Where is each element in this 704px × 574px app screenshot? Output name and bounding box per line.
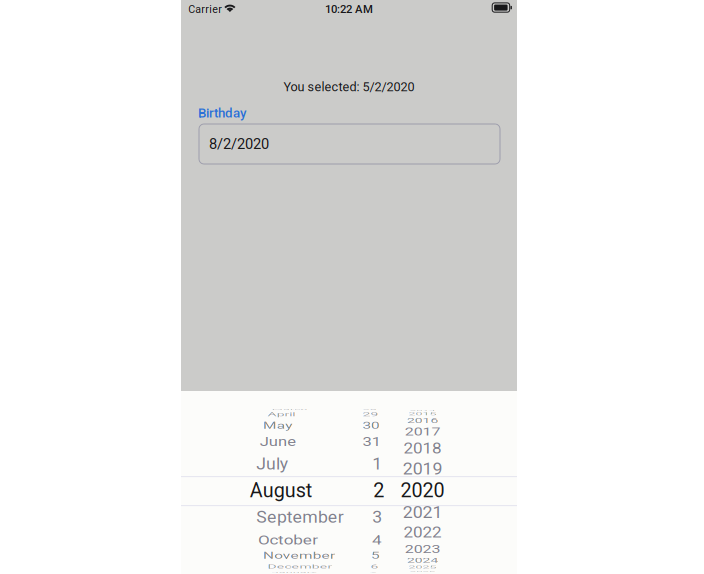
staticText: Carrier (188, 3, 222, 16)
staticText: November (255, 545, 339, 566)
staticText: 2024 (403, 550, 443, 571)
button[interactable]: 8/2/2020 (199, 124, 500, 164)
staticText: 2022 (403, 522, 443, 543)
staticText: 2015 (403, 403, 443, 424)
staticText: 5 (372, 545, 382, 566)
staticText: You selected: 5/2/2020 (283, 80, 414, 94)
staticText: 3 (372, 507, 382, 528)
staticText: 2 (372, 480, 382, 501)
staticText: 2021 (403, 502, 443, 523)
staticText: June (255, 431, 295, 452)
staticText: 2018 (403, 438, 443, 459)
staticText: January (255, 562, 320, 574)
staticText: May (255, 415, 290, 436)
button[interactable]: Birthday (198, 105, 318, 121)
staticText: 2014 (403, 400, 443, 421)
staticText: August (255, 480, 312, 501)
staticText: 2026 (403, 561, 443, 574)
staticText: July (255, 453, 288, 475)
staticText: 28 (362, 399, 382, 420)
staticText: 6 (372, 556, 382, 574)
staticText: 4 (372, 529, 382, 550)
staticText: March (255, 399, 306, 420)
staticText: 2019 (403, 458, 443, 479)
staticText: 2023 (403, 539, 443, 560)
staticText: 31 (362, 431, 382, 452)
staticText: December (255, 556, 338, 574)
staticText: 30 (362, 415, 382, 436)
staticText: 2025 (403, 557, 443, 574)
staticText: September (255, 507, 344, 528)
staticText: 1 (372, 453, 382, 475)
staticText: October (255, 529, 318, 550)
staticText: April (255, 404, 291, 425)
staticText: 2020 (403, 480, 443, 501)
staticText: 29 (362, 404, 382, 425)
staticText: 7 (372, 562, 382, 574)
staticText: 8/2/2020 (209, 135, 269, 153)
staticText: 10:22 AM (325, 3, 373, 16)
staticText: 2017 (403, 421, 443, 442)
staticText: Birthday (198, 105, 247, 121)
staticText: 2016 (403, 410, 443, 431)
